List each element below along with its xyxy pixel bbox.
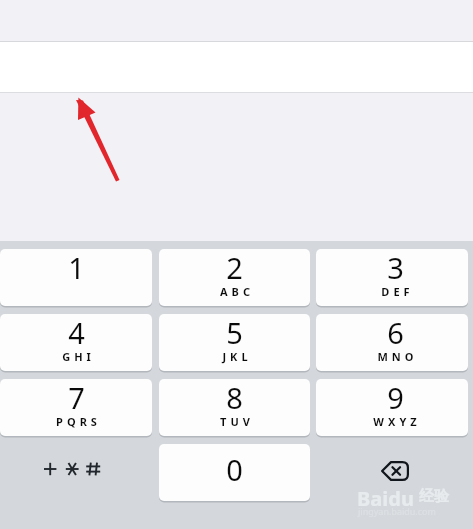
staticText: MNO bbox=[377, 349, 418, 364]
button[interactable]: 1 bbox=[0, 249, 152, 306]
button[interactable]: Backspace bbox=[316, 444, 468, 501]
staticText: Baidu bbox=[357, 485, 414, 512]
button[interactable]: 4 bbox=[0, 314, 152, 371]
staticText: WXYZ bbox=[373, 414, 421, 429]
button[interactable]: 5 bbox=[159, 314, 310, 371]
staticText: 4 bbox=[68, 314, 85, 352]
staticText: ABC bbox=[220, 284, 254, 299]
staticText: PQRS bbox=[56, 414, 101, 429]
staticText: 7 bbox=[68, 379, 85, 417]
staticText: 3 bbox=[387, 249, 404, 287]
staticText: GHI bbox=[62, 349, 95, 364]
button[interactable]: Plus star hash bbox=[0, 444, 152, 501]
staticText: TUV bbox=[220, 414, 254, 429]
staticText: 8 bbox=[226, 379, 243, 417]
staticText: 6 bbox=[387, 314, 404, 352]
staticText: 1 bbox=[68, 249, 85, 287]
button[interactable]: 9 bbox=[316, 379, 468, 436]
button[interactable]: 6 bbox=[316, 314, 468, 371]
staticText: 9 bbox=[387, 379, 404, 417]
staticText: jingyan.baidu.com bbox=[358, 505, 436, 517]
staticText: 经验 bbox=[419, 487, 449, 506]
staticText: 2 bbox=[226, 249, 243, 287]
button[interactable]: 3 bbox=[316, 249, 468, 306]
button[interactable]: 2 bbox=[159, 249, 310, 306]
button[interactable]: 8 bbox=[159, 379, 310, 436]
button[interactable]: 0 bbox=[159, 444, 310, 501]
button[interactable]: 7 bbox=[0, 379, 152, 436]
staticText: DEF bbox=[381, 284, 414, 299]
staticText: 5 bbox=[226, 314, 243, 352]
button[interactable]: Phone number field bbox=[0, 41, 473, 93]
staticText: 0 bbox=[226, 450, 243, 489]
staticText: JKL bbox=[222, 349, 252, 364]
